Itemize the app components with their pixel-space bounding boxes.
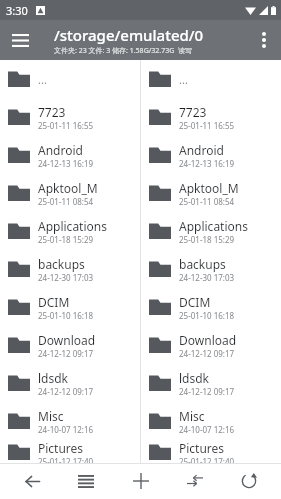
button[interactable]: ... <box>0 60 140 98</box>
button[interactable]: Add <box>119 464 163 498</box>
button[interactable]: Menu <box>0 20 40 60</box>
staticText: DCIM <box>38 294 70 310</box>
staticText: ldsdk <box>179 370 210 386</box>
button[interactable]: Back <box>10 464 54 498</box>
button[interactable]: Applications <box>0 212 140 250</box>
staticText: Applications <box>38 218 107 234</box>
button[interactable]: More options <box>247 20 281 60</box>
button[interactable]: Android <box>0 136 140 174</box>
staticText: Download <box>179 332 237 348</box>
staticText: DCIM <box>179 294 211 310</box>
staticText: 25-01-11 08:54 <box>179 196 235 207</box>
button[interactable]: Apktool_M <box>141 174 281 212</box>
staticText: 7723 <box>179 104 207 120</box>
button[interactable]: ... <box>141 60 281 98</box>
staticText: backups <box>38 256 85 272</box>
staticText: 25-01-11 16:55 <box>38 120 94 131</box>
staticText: 25-01-12 17:40 <box>38 456 94 463</box>
staticText: Apktool_M <box>38 180 98 196</box>
staticText: /storage/emulated/0 <box>54 25 204 45</box>
staticText: 文件夹: 23 文件: 3 储存: 1.58G/32.73G 读写 <box>54 46 192 56</box>
staticText: 24-12-30 17:03 <box>38 272 94 283</box>
staticText: 24-10-07 12:16 <box>179 424 235 435</box>
button[interactable]: backups <box>141 250 281 288</box>
button[interactable]: Download <box>141 326 281 364</box>
button[interactable]: List <box>64 464 108 498</box>
button[interactable]: Pictures <box>0 440 140 463</box>
staticText: 3:30 <box>6 3 28 18</box>
button[interactable]: Apktool_M <box>0 174 140 212</box>
button[interactable]: Collapse <box>173 464 217 498</box>
button[interactable]: ldsdk <box>141 364 281 402</box>
staticText: 24-12-12 09:17 <box>179 386 235 397</box>
staticText: 25-01-18 15:29 <box>179 234 235 245</box>
staticText: 24-12-13 16:19 <box>38 158 94 169</box>
staticText: 24-12-13 16:19 <box>179 158 235 169</box>
staticText: 24-12-12 09:17 <box>179 348 235 359</box>
staticText: 25-01-12 17:40 <box>179 456 235 463</box>
button[interactable]: ldsdk <box>0 364 140 402</box>
staticText: 24-12-12 09:17 <box>38 348 94 359</box>
button[interactable]: 7723 <box>141 98 281 136</box>
staticText: Applications <box>179 218 248 234</box>
staticText: ... <box>38 72 47 87</box>
staticText: 24-12-12 09:17 <box>38 386 94 397</box>
staticText: backups <box>179 256 226 272</box>
staticText: 25-01-11 08:54 <box>38 196 94 207</box>
button[interactable]: Android <box>141 136 281 174</box>
staticText: 25-01-18 15:29 <box>38 234 94 245</box>
button[interactable]: Refresh <box>227 464 271 498</box>
staticText: 24-10-07 12:16 <box>38 424 94 435</box>
staticText: Android <box>38 142 83 158</box>
staticText: ldsdk <box>38 370 69 386</box>
staticText: Misc <box>179 408 205 424</box>
staticText: Pictures <box>179 440 225 456</box>
button[interactable]: Download <box>0 326 140 364</box>
button[interactable]: backups <box>0 250 140 288</box>
button[interactable]: Applications <box>141 212 281 250</box>
staticText: 25-01-11 16:55 <box>179 120 235 131</box>
button[interactable]: Misc <box>141 402 281 440</box>
staticText: ... <box>179 72 188 87</box>
staticText: Apktool_M <box>179 180 239 196</box>
staticText: 24-12-30 17:03 <box>179 272 235 283</box>
staticText: Misc <box>38 408 64 424</box>
staticText: Pictures <box>38 440 84 456</box>
staticText: 25-01-10 16:18 <box>38 310 94 321</box>
button[interactable]: DCIM <box>141 288 281 326</box>
button[interactable]: DCIM <box>0 288 140 326</box>
staticText: 7723 <box>38 104 66 120</box>
staticText: 25-01-10 16:18 <box>179 310 235 321</box>
button[interactable]: Misc <box>0 402 140 440</box>
button[interactable]: Pictures <box>141 440 281 463</box>
staticText: Android <box>179 142 224 158</box>
button[interactable]: 7723 <box>0 98 140 136</box>
staticText: Download <box>38 332 96 348</box>
